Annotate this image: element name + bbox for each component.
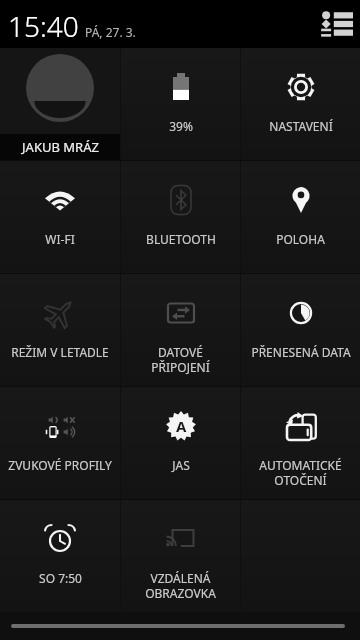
button[interactable]: POLOHA xyxy=(241,161,360,273)
button[interactable]: A xyxy=(121,387,240,499)
staticText: A xyxy=(176,416,187,436)
button[interactable]: REŽIM V LETADLE xyxy=(0,274,120,386)
button[interactable]: VZDÁLENÁ OBRAZOVKA xyxy=(121,500,240,612)
staticText: JAKUB MRÁZ xyxy=(22,138,99,156)
button[interactable]: SO 7:50 xyxy=(0,500,120,612)
staticText: POLOHA xyxy=(276,231,325,247)
staticText: ZVUKOVÉ PROFILY xyxy=(8,457,112,473)
button[interactable]: ZVUKOVÉ PROFILY xyxy=(0,387,120,499)
staticText: DATOVÉ PŘIPOJENÍ xyxy=(151,344,210,375)
staticText: BLUETOOTH xyxy=(146,231,216,247)
button[interactable]: 39% xyxy=(121,48,240,160)
button[interactable]: Quick settings xyxy=(321,11,353,37)
button[interactable]: JAKUB MRÁZ xyxy=(0,48,120,160)
staticText: PŘENESENÁ DATA xyxy=(251,344,351,360)
staticText: AUTOMATICKÉ OTOČENÍ xyxy=(259,457,342,488)
button[interactable]: NASTAVENÍ xyxy=(241,48,360,160)
button[interactable]: WI-FI xyxy=(0,161,120,273)
staticText: 15:40 xyxy=(8,7,79,45)
button[interactable]: PŘENESENÁ DATA xyxy=(241,274,360,386)
button[interactable]: AUTOMATICKÉ OTOČENÍ xyxy=(241,387,360,499)
staticText: NASTAVENÍ xyxy=(269,118,333,134)
staticText: JAS xyxy=(172,457,190,473)
button[interactable]: BLUETOOTH xyxy=(121,161,240,273)
button[interactable]: DATOVÉ PŘIPOJENÍ xyxy=(121,274,240,386)
staticText: REŽIM V LETADLE xyxy=(11,344,109,360)
staticText: SO 7:50 xyxy=(39,570,82,586)
staticText: VZDÁLENÁ OBRAZOVKA xyxy=(145,570,216,601)
staticText: WI-FI xyxy=(45,231,75,247)
staticText: PÁ, 27. 3. xyxy=(85,24,136,40)
staticText: 39% xyxy=(169,118,193,134)
